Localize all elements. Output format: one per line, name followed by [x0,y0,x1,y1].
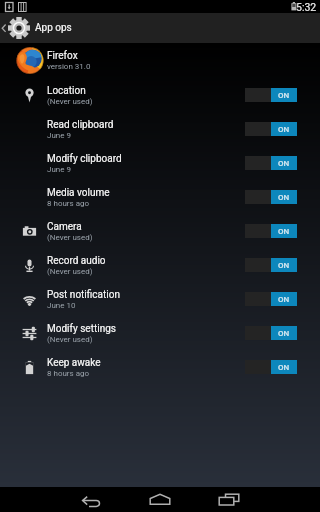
button[interactable]: Camera [0,214,320,248]
button[interactable]: ON [245,190,297,204]
other: Up [0,13,33,43]
staticText: App ops [35,22,72,34]
button[interactable]: ON [245,326,297,340]
staticText: ON [278,125,290,134]
button[interactable]: Home [130,487,190,512]
staticText: ON [278,329,290,338]
staticText: (Never used) [47,233,93,242]
staticText: (Never used) [47,335,93,344]
staticText: Post notification [47,289,120,301]
button[interactable]: ON [245,258,297,272]
staticText: Firefox [47,50,78,62]
staticText: Read clipboard [47,119,114,131]
button[interactable]: Modify clipboard [0,146,320,180]
staticText: June 10 [47,301,76,310]
button[interactable]: Record audio [0,248,320,282]
button[interactable]: Read clipboard [0,112,320,146]
staticText: ON [278,193,290,202]
button[interactable]: ON [245,156,297,170]
staticText: Modify clipboard [47,153,122,165]
staticText: 5:32 [296,1,317,13]
button[interactable]: ON [245,122,297,136]
staticText: ON [278,363,290,372]
staticText: ON [278,91,290,100]
staticText: Record audio [47,255,106,267]
staticText: version 31.0 [47,62,91,71]
button[interactable]: Recent apps [199,487,259,512]
staticText: ON [278,159,290,168]
staticText: Keep awake [47,357,101,369]
button[interactable]: Media volume [0,180,320,214]
button[interactable]: ON [245,360,297,374]
staticText: ON [278,261,290,270]
staticText: ON [278,295,290,304]
staticText: 8 hours ago [47,199,90,208]
staticText: 8 hours ago [47,369,90,378]
staticText: Camera [47,221,82,233]
button[interactable]: ON [245,88,297,102]
button[interactable]: Firefox [0,43,320,78]
staticText: Location [47,85,86,97]
button[interactable]: Post notification [0,282,320,316]
button[interactable]: Back [62,487,122,512]
staticText: (Never used) [47,267,93,276]
staticText: Media volume [47,187,110,199]
button[interactable]: ON [245,292,297,306]
staticText: ON [278,227,290,236]
staticText: June 9 [47,165,71,174]
button[interactable]: Modify settings [0,316,320,350]
staticText: June 9 [47,131,71,140]
staticText: Modify settings [47,323,116,335]
button[interactable]: Keep awake [0,350,320,384]
staticText: (Never used) [47,97,93,106]
button[interactable]: Up [0,13,320,43]
button[interactable]: ON [245,224,297,238]
button[interactable]: Location [0,78,320,112]
